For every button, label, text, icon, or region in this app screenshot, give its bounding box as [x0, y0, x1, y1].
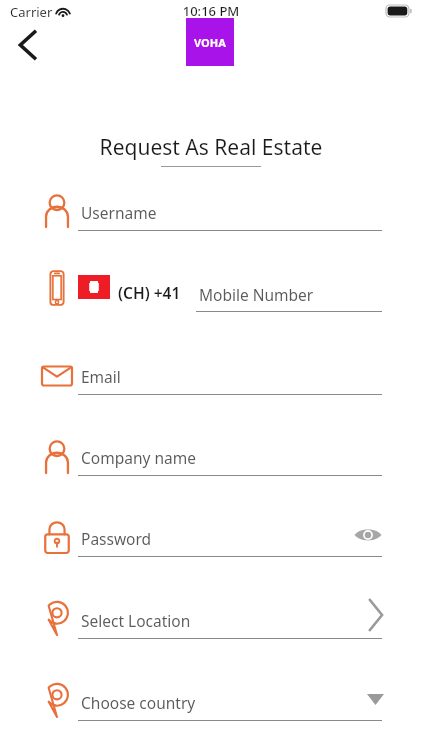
staticText: Carrier	[10, 3, 53, 21]
button[interactable]	[36, 512, 382, 566]
button[interactable]: Show password	[348, 515, 388, 555]
button[interactable]	[36, 674, 382, 728]
staticText: Email	[81, 366, 121, 387]
button[interactable]: VOHA	[186, 18, 234, 66]
button[interactable]: Back	[6, 22, 52, 68]
staticText: VOHA	[194, 35, 226, 50]
staticText: Choose country	[81, 692, 196, 713]
button[interactable]	[36, 432, 382, 486]
staticText: 10:16 PM	[0, 2, 422, 20]
staticText: Request As Real Estate	[0, 133, 422, 162]
staticText: Password	[81, 528, 152, 549]
button[interactable]	[36, 266, 382, 322]
staticText: (CH) +41	[118, 282, 181, 303]
staticText: Username	[81, 202, 157, 223]
button[interactable]	[36, 354, 382, 408]
staticText: Select Location	[81, 610, 191, 631]
button[interactable]	[36, 592, 382, 646]
staticText: Mobile Number	[199, 284, 314, 305]
button[interactable]	[36, 186, 382, 240]
button[interactable]: Choose country dropdown	[356, 680, 394, 718]
button[interactable]: Open location picker	[356, 595, 396, 635]
staticText: Company name	[81, 447, 196, 468]
